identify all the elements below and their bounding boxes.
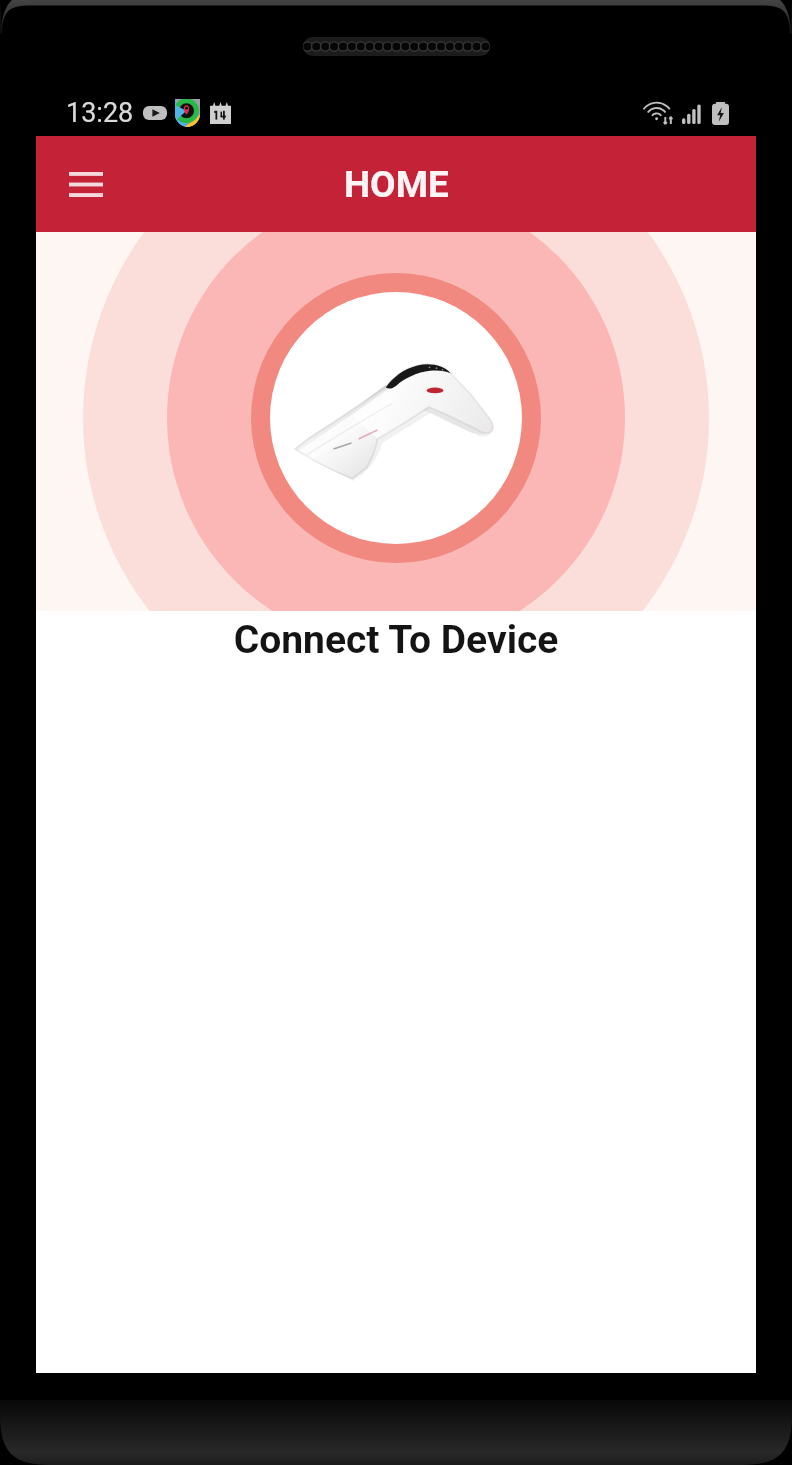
staticText: HOME — [344, 163, 449, 206]
staticText: Connect To Device — [36, 617, 756, 663]
button[interactable]: Open navigation menu — [51, 149, 121, 219]
button[interactable]: Connect To Device — [36, 232, 756, 677]
staticText: 13:28 — [66, 97, 134, 129]
